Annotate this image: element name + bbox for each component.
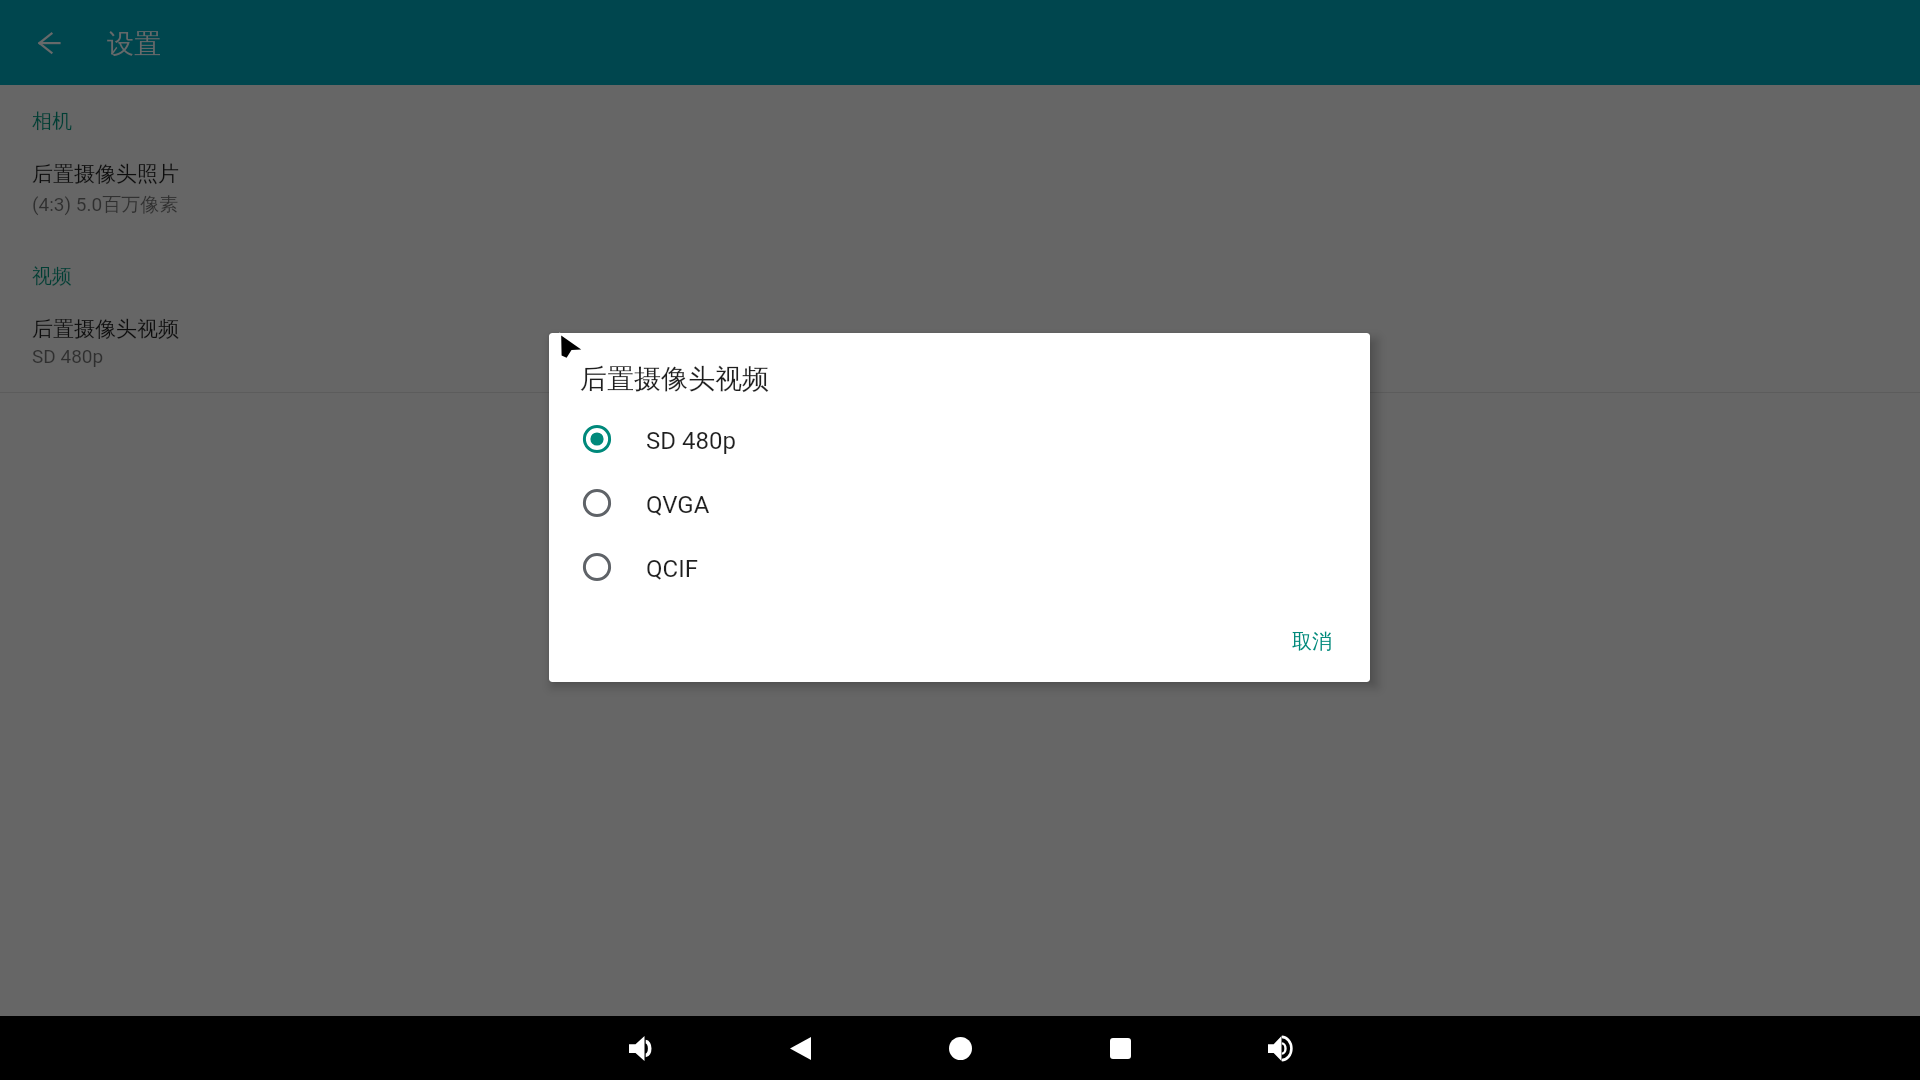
staticText: 后置摄像头视频 xyxy=(32,316,179,342)
staticText: QVGA xyxy=(646,491,710,519)
button[interactable]: 后置摄像头视频 xyxy=(0,305,1920,392)
staticText: 相机 xyxy=(32,109,72,134)
staticText: 后置摄像头照片 xyxy=(32,161,179,187)
button[interactable]: QVGA xyxy=(549,471,1370,535)
button[interactable]: 取消 xyxy=(1264,616,1360,666)
button[interactable]: Volume down xyxy=(590,1016,690,1080)
button[interactable]: Back xyxy=(750,1016,850,1080)
staticText: 视频 xyxy=(32,264,72,289)
staticText: QCIF xyxy=(646,555,698,583)
button[interactable]: Recent apps xyxy=(1070,1016,1170,1080)
staticText: 设置 xyxy=(107,27,161,61)
staticText: 取消 xyxy=(1292,629,1332,654)
button[interactable]: SD 480p xyxy=(549,407,1370,471)
button[interactable]: 后置摄像头照片 xyxy=(0,150,1920,237)
button[interactable]: Volume up xyxy=(1230,1016,1330,1080)
staticText: (4:3) 5.0百万像素 xyxy=(32,193,179,217)
button[interactable]: QCIF xyxy=(549,535,1370,599)
staticText: 后置摄像头视频 xyxy=(580,362,769,396)
button[interactable]: Home xyxy=(910,1016,1010,1080)
staticText: SD 480p xyxy=(646,427,736,455)
button[interactable]: Navigate up xyxy=(26,19,73,66)
staticText: SD 480p xyxy=(32,345,104,367)
